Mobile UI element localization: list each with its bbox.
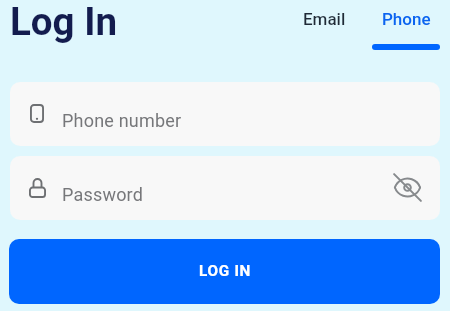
button[interactable]: Show password	[393, 173, 422, 202]
button[interactable]: LOG IN	[9, 239, 440, 304]
button[interactable]: Phone	[372, 7, 440, 31]
button[interactable]: Phone number	[10, 82, 440, 146]
staticText: Password	[62, 184, 144, 205]
staticText: Phone number	[62, 110, 182, 131]
staticText: Phone	[382, 9, 431, 29]
staticText: LOG IN	[199, 262, 252, 280]
button[interactable]: Password	[10, 156, 440, 220]
staticText: Log In	[10, 0, 118, 44]
staticText: Email	[303, 9, 346, 29]
button[interactable]: Email	[293, 7, 355, 31]
